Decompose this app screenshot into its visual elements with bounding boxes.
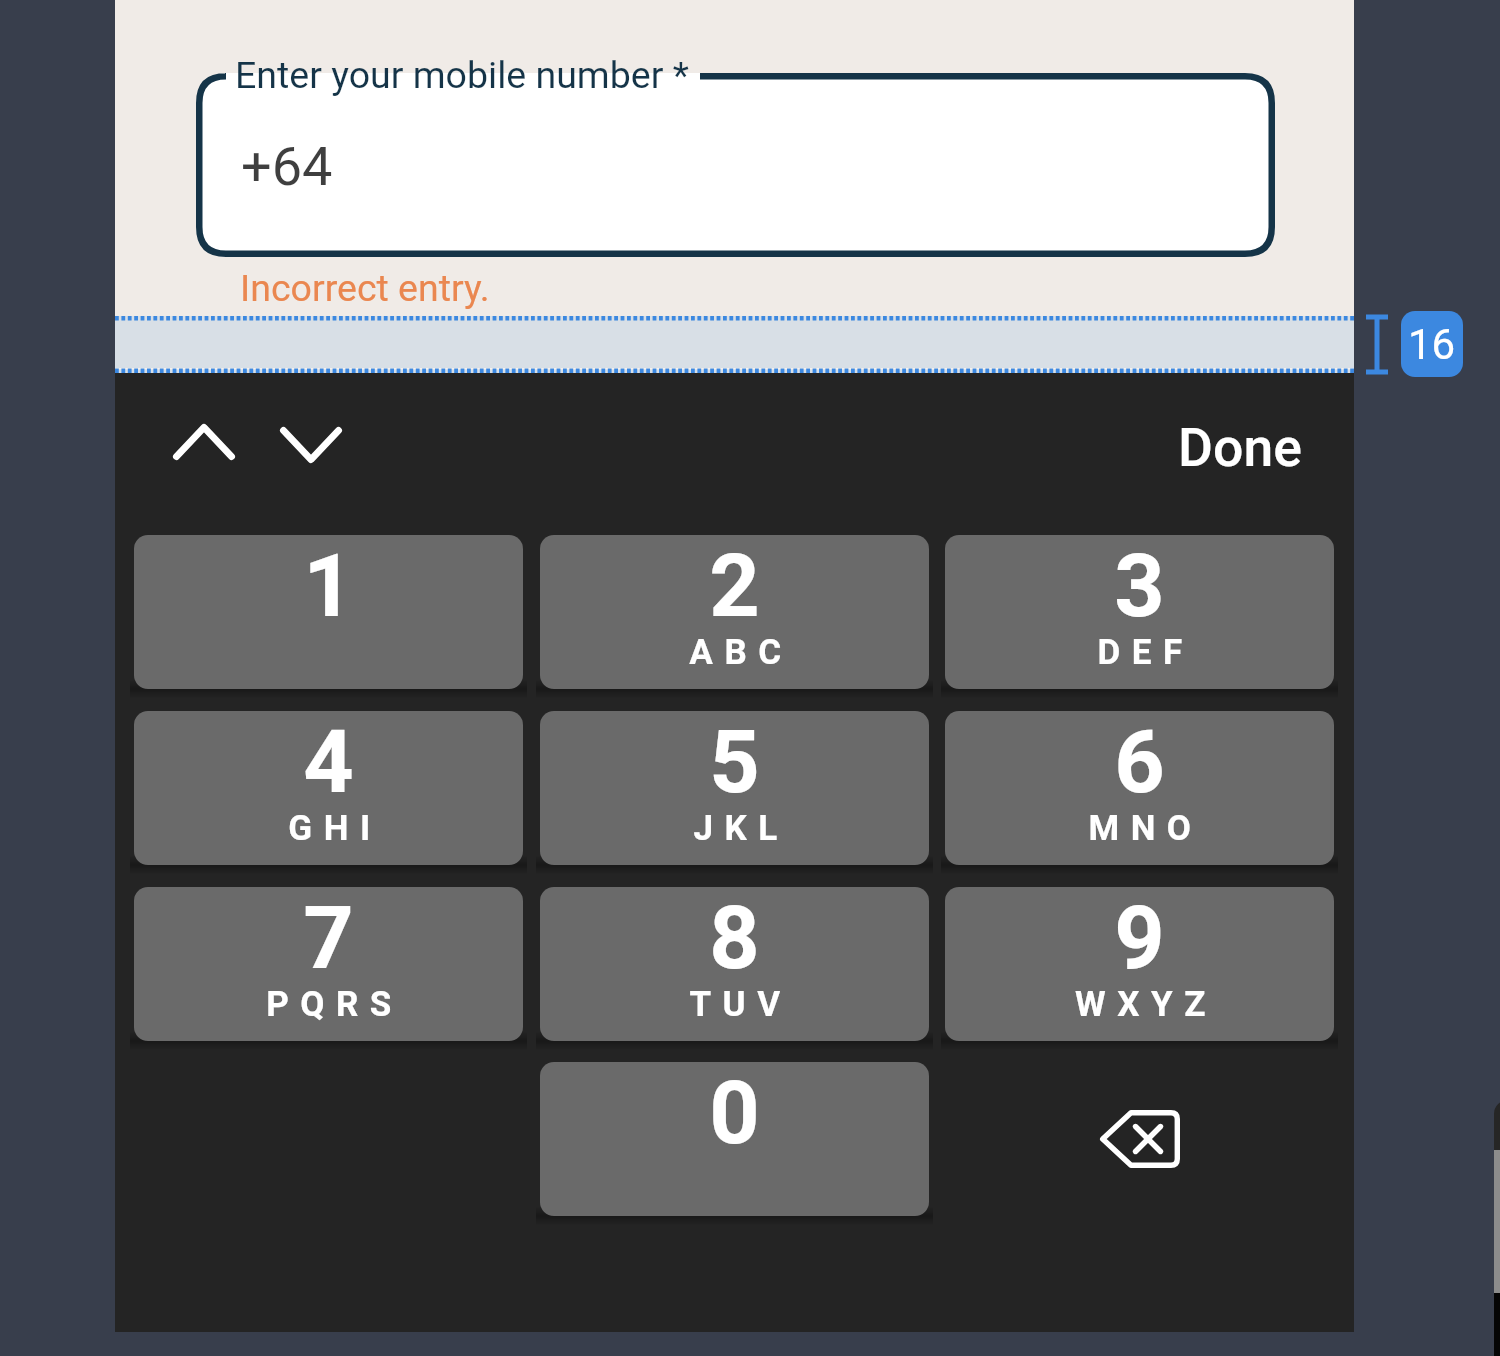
staticText: Enter your mobile number *: [235, 53, 689, 97]
button[interactable]: 5: [540, 711, 929, 865]
staticText: 2: [709, 535, 760, 637]
button[interactable]: 8: [540, 887, 929, 1041]
staticText: 7: [303, 887, 354, 989]
button[interactable]: Delete: [945, 1062, 1334, 1216]
staticText: ABC: [689, 632, 793, 673]
button[interactable]: Done: [1145, 395, 1335, 499]
staticText: 4: [303, 711, 354, 813]
button[interactable]: 2: [540, 535, 929, 689]
button[interactable]: Previous field: [144, 384, 264, 500]
staticText: MNO: [1088, 808, 1203, 849]
staticText: 6: [1114, 711, 1165, 813]
button[interactable]: 1: [134, 535, 523, 689]
button[interactable]: Next field: [251, 387, 371, 503]
staticText: 9: [1114, 887, 1165, 989]
button[interactable]: 0: [540, 1062, 929, 1216]
button[interactable]: 6: [945, 711, 1334, 865]
button[interactable]: 7: [134, 887, 523, 1041]
staticText: Incorrect entry.: [240, 266, 490, 310]
button[interactable]: 9: [945, 887, 1334, 1041]
staticText: +64: [241, 135, 333, 198]
staticText: DEF: [1097, 632, 1194, 673]
staticText: Done: [1178, 416, 1302, 479]
staticText: TUV: [689, 984, 792, 1025]
button[interactable]: 3: [945, 535, 1334, 689]
staticText: 16: [1408, 320, 1456, 369]
staticText: 0: [709, 1062, 760, 1164]
staticText: PQRS: [266, 984, 403, 1025]
staticText: 5: [709, 711, 760, 813]
staticText: 1: [303, 535, 354, 637]
staticText: WXYZ: [1075, 984, 1217, 1025]
staticText: 3: [1114, 535, 1165, 637]
button[interactable]: Enter your mobile number: [196, 73, 1275, 257]
staticText: 8: [709, 887, 760, 989]
button[interactable]: 4: [134, 711, 523, 865]
staticText: JKL: [693, 808, 789, 849]
staticText: GHI: [288, 808, 382, 849]
